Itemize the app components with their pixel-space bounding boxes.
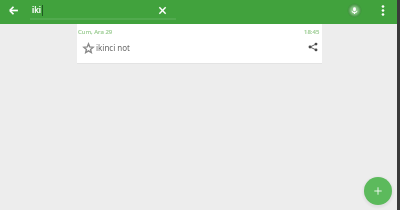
staticText: Cum, Ara 29: [78, 28, 113, 36]
button[interactable]: Add note: [364, 177, 392, 205]
button[interactable]: Back: [3, 0, 23, 22]
button[interactable]: Star note: [80, 39, 96, 55]
staticText: ikinci not: [96, 42, 130, 53]
button[interactable]: More options: [373, 0, 393, 22]
button[interactable]: Voice search: [344, 0, 364, 22]
staticText: iki: [32, 4, 41, 16]
staticText: 18:45: [304, 28, 320, 36]
button[interactable]: Star note: [77, 34, 322, 60]
button[interactable]: Share note: [304, 38, 322, 56]
button[interactable]: Clear search: [152, 0, 172, 22]
